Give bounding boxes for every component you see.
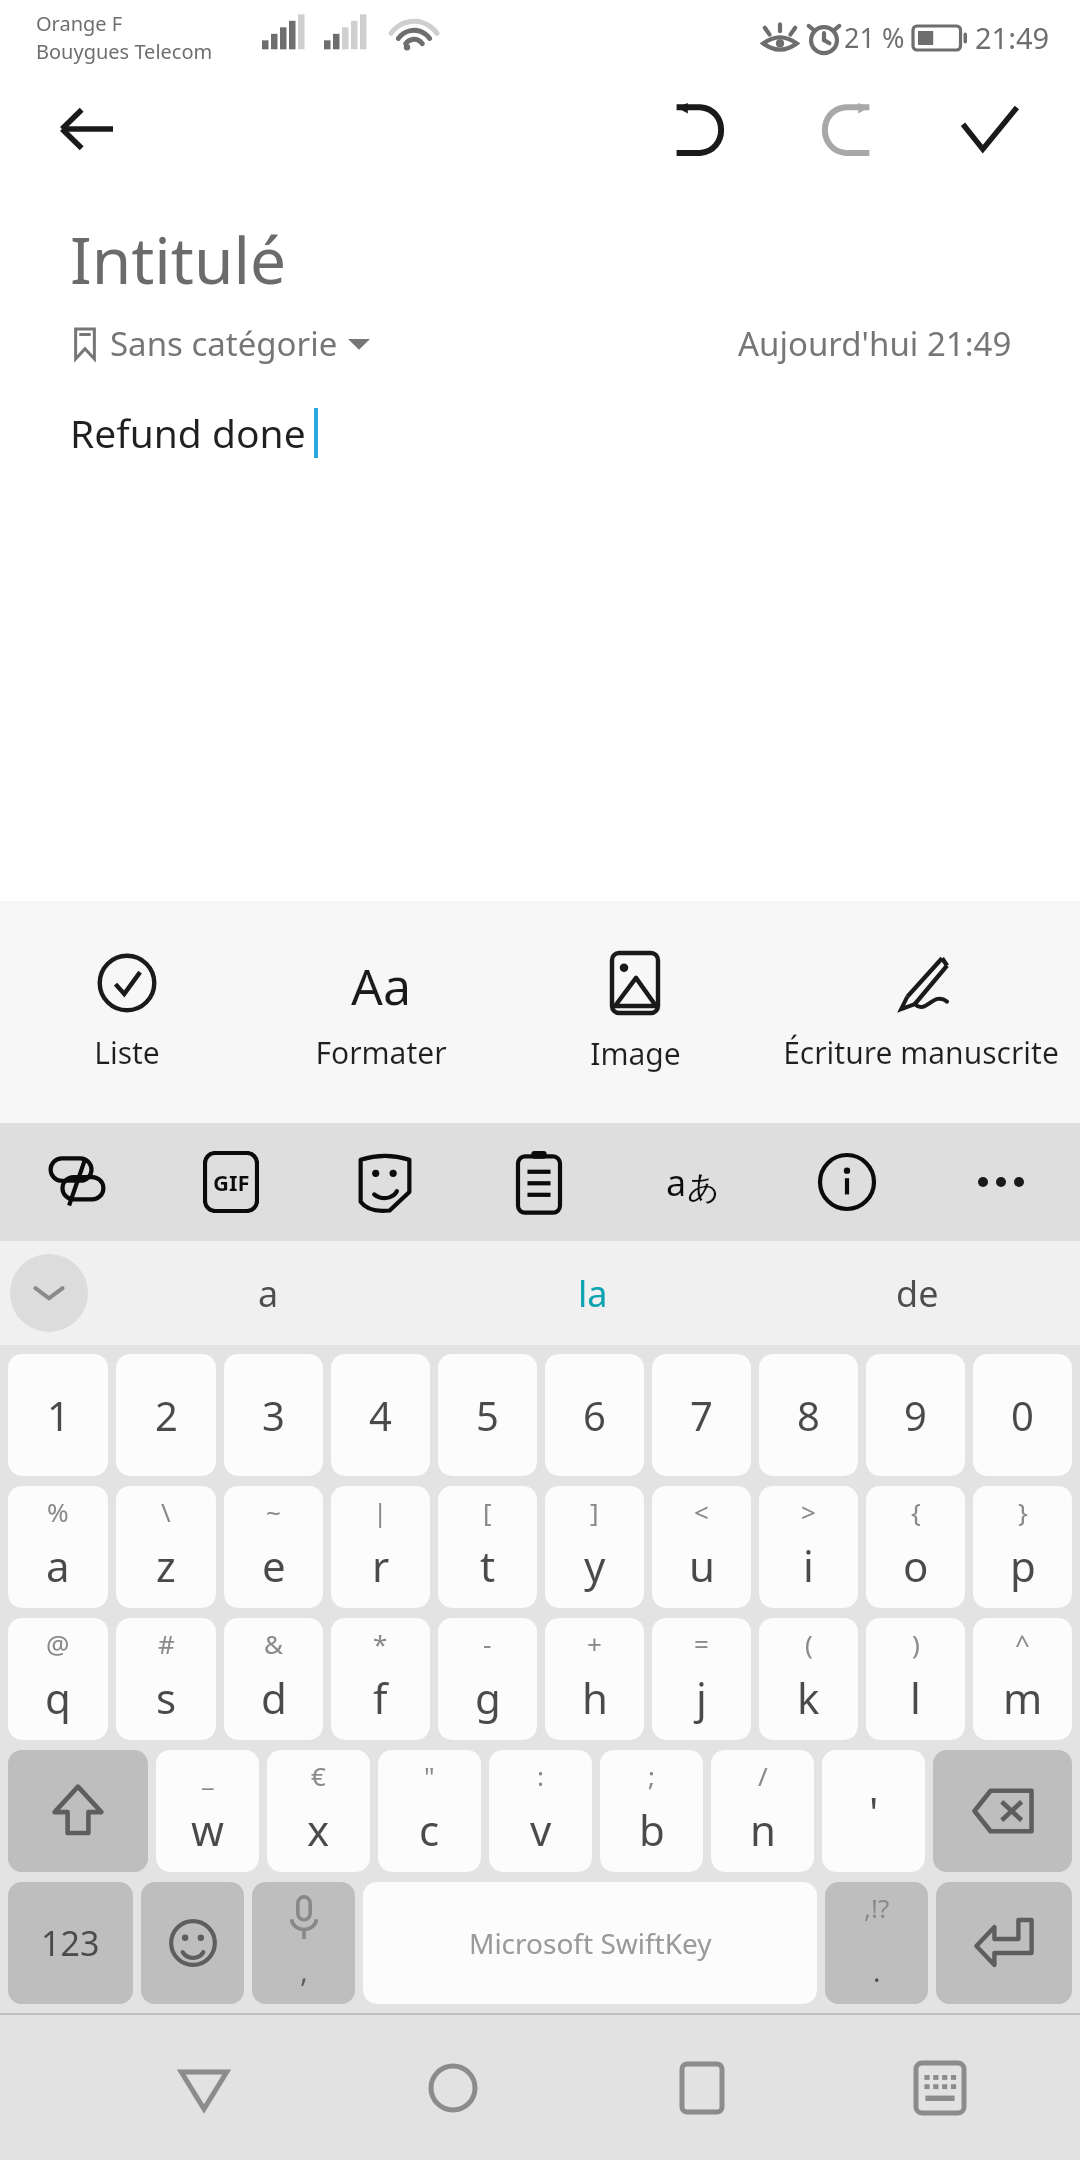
staticText: ~ bbox=[266, 1494, 281, 1529]
button[interactable]: a bbox=[106, 1241, 430, 1345]
button[interactable]: € bbox=[267, 1750, 370, 1872]
button[interactable]: > bbox=[759, 1486, 858, 1608]
button[interactable]: { bbox=[866, 1486, 965, 1608]
staticText: ,!? bbox=[864, 1890, 890, 1925]
staticText: ] bbox=[590, 1494, 599, 1529]
staticText: d bbox=[261, 1669, 287, 1726]
button[interactable]: Liste bbox=[0, 901, 254, 1123]
staticText: + bbox=[587, 1626, 602, 1661]
button[interactable]: Recents bbox=[642, 2015, 762, 2160]
button[interactable]: # bbox=[116, 1618, 216, 1740]
button[interactable]: Aa bbox=[254, 901, 508, 1123]
staticText: @ bbox=[46, 1626, 70, 1661]
staticText: m bbox=[1003, 1669, 1043, 1726]
button[interactable]: + bbox=[545, 1618, 644, 1740]
button[interactable]: " bbox=[378, 1750, 481, 1872]
button[interactable]: Info bbox=[770, 1123, 924, 1241]
button[interactable]: ,!? bbox=[825, 1882, 928, 2004]
button[interactable]: ( bbox=[759, 1618, 858, 1740]
staticText: 6 bbox=[583, 1388, 606, 1442]
button[interactable]: More bbox=[924, 1123, 1078, 1241]
button[interactable]: Translate bbox=[616, 1123, 770, 1241]
button[interactable]: \ bbox=[116, 1486, 216, 1608]
button[interactable]: Save bbox=[946, 86, 1032, 172]
staticText: [ bbox=[483, 1494, 492, 1529]
button[interactable]: Home bbox=[393, 2015, 513, 2160]
button[interactable]: Redo bbox=[804, 86, 890, 172]
button[interactable]: Écriture manuscrite bbox=[762, 901, 1080, 1123]
button[interactable]: Stickers bbox=[308, 1123, 462, 1241]
button[interactable]: 5 bbox=[438, 1354, 537, 1476]
button[interactable]: Image bbox=[508, 901, 762, 1123]
button[interactable]: ' bbox=[822, 1750, 925, 1872]
button[interactable]: Expand bbox=[10, 1254, 88, 1332]
button[interactable]: 7 bbox=[652, 1354, 751, 1476]
staticText: g bbox=[475, 1669, 501, 1726]
button[interactable]: * bbox=[331, 1618, 430, 1740]
button[interactable]: Enter bbox=[936, 1882, 1072, 2004]
button[interactable]: Shift bbox=[8, 1750, 148, 1872]
button[interactable]: = bbox=[652, 1618, 751, 1740]
staticText: 8 bbox=[797, 1388, 820, 1442]
button[interactable]: Emoji bbox=[141, 1882, 244, 2004]
button[interactable]: ~ bbox=[224, 1486, 323, 1608]
button[interactable]: ) bbox=[866, 1618, 965, 1740]
button[interactable]: @ bbox=[8, 1618, 108, 1740]
staticText: ( bbox=[805, 1626, 813, 1661]
button[interactable]: ] bbox=[545, 1486, 644, 1608]
button[interactable]: Hide keyboard bbox=[880, 2015, 1000, 2160]
button[interactable]: : bbox=[489, 1750, 592, 1872]
button[interactable]: } bbox=[973, 1486, 1072, 1608]
button[interactable]: 123 bbox=[8, 1882, 133, 2004]
button[interactable]: _ bbox=[156, 1750, 259, 1872]
button[interactable]: Back bbox=[46, 91, 122, 167]
staticText: 4 bbox=[369, 1388, 392, 1442]
button[interactable]: 6 bbox=[545, 1354, 644, 1476]
button[interactable]: Space bbox=[363, 1882, 817, 2004]
button[interactable]: GIF bbox=[154, 1123, 308, 1241]
button[interactable]: & bbox=[224, 1618, 323, 1740]
staticText: \ bbox=[161, 1494, 171, 1529]
button[interactable]: Back bbox=[144, 2015, 264, 2160]
button[interactable]: / bbox=[711, 1750, 814, 1872]
button[interactable]: de bbox=[755, 1241, 1080, 1345]
button[interactable]: % bbox=[8, 1486, 108, 1608]
button[interactable]: 0 bbox=[973, 1354, 1072, 1476]
button[interactable]: 9 bbox=[866, 1354, 965, 1476]
button[interactable]: la bbox=[430, 1241, 755, 1345]
staticText: 2 bbox=[155, 1388, 178, 1442]
button[interactable]: [ bbox=[438, 1486, 537, 1608]
staticText: Bouygues Telecom bbox=[36, 38, 213, 65]
button[interactable]: - bbox=[438, 1618, 537, 1740]
button[interactable]: Backspace bbox=[933, 1750, 1072, 1872]
button[interactable]: 1 bbox=[8, 1354, 108, 1476]
button[interactable]: Intitulé bbox=[70, 216, 1080, 303]
staticText: q bbox=[45, 1669, 71, 1726]
button[interactable]: 8 bbox=[759, 1354, 858, 1476]
staticText: Écriture manuscrite bbox=[783, 1032, 1059, 1073]
button[interactable]: Clipboard bbox=[462, 1123, 616, 1241]
staticText: < bbox=[694, 1494, 709, 1529]
staticText: Orange F bbox=[36, 10, 123, 37]
button[interactable]: ^ bbox=[973, 1618, 1072, 1740]
button[interactable]: 4 bbox=[331, 1354, 430, 1476]
button[interactable]: Refund done bbox=[70, 406, 1080, 459]
button[interactable]: < bbox=[652, 1486, 751, 1608]
staticText: > bbox=[801, 1494, 816, 1529]
button[interactable]: 2 bbox=[116, 1354, 216, 1476]
button[interactable]: SwiftKey bbox=[0, 1123, 154, 1241]
button[interactable]: Voice input bbox=[252, 1882, 355, 2004]
button[interactable]: 3 bbox=[224, 1354, 323, 1476]
staticText: a bbox=[258, 1269, 279, 1318]
button[interactable]: Undo bbox=[656, 86, 742, 172]
staticText: | bbox=[373, 1494, 388, 1529]
button[interactable]: ; bbox=[600, 1750, 703, 1872]
staticText: o bbox=[903, 1537, 929, 1594]
staticText: , bbox=[300, 1950, 309, 1991]
staticText: 7 bbox=[690, 1388, 713, 1442]
staticText: i bbox=[803, 1537, 814, 1594]
button[interactable]: | bbox=[331, 1486, 430, 1608]
staticText: t bbox=[480, 1537, 496, 1594]
staticText: 9 bbox=[904, 1388, 927, 1442]
button[interactable]: Sans catégorie bbox=[72, 321, 370, 366]
